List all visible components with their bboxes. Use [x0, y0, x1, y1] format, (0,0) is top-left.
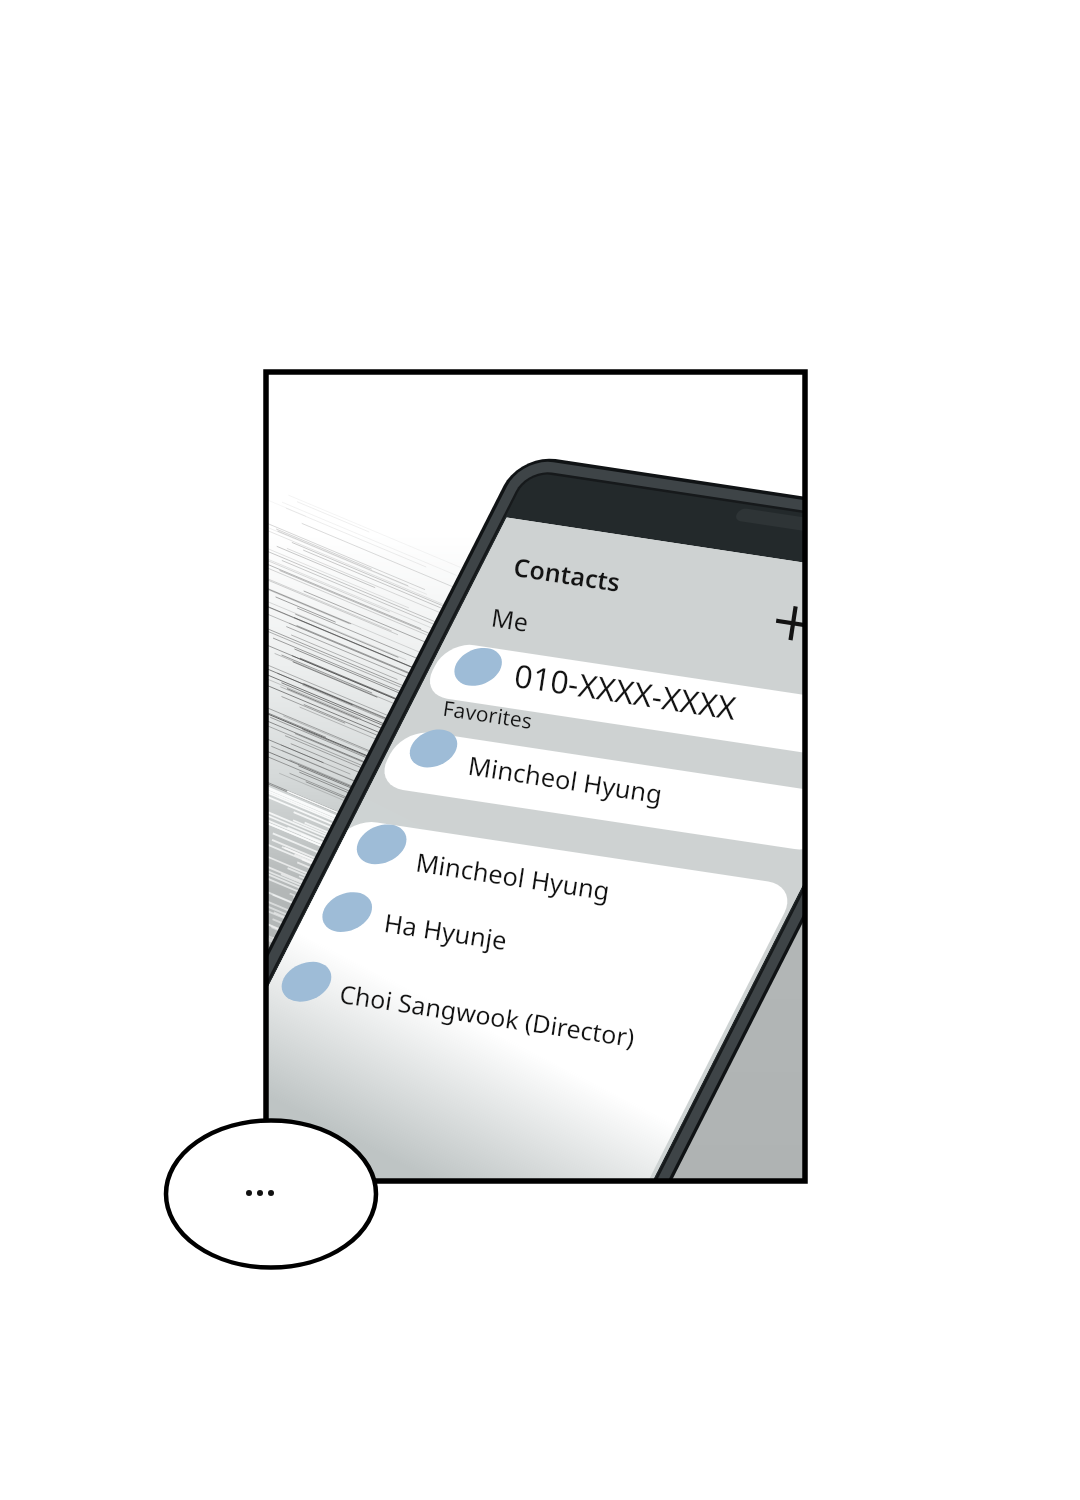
button[interactable] [400, 722, 730, 788]
button[interactable] [286, 968, 626, 1042]
button[interactable] [350, 820, 690, 894]
button[interactable] [320, 894, 660, 968]
button[interactable] [440, 634, 770, 696]
button[interactable]: Add contact [768, 598, 820, 650]
